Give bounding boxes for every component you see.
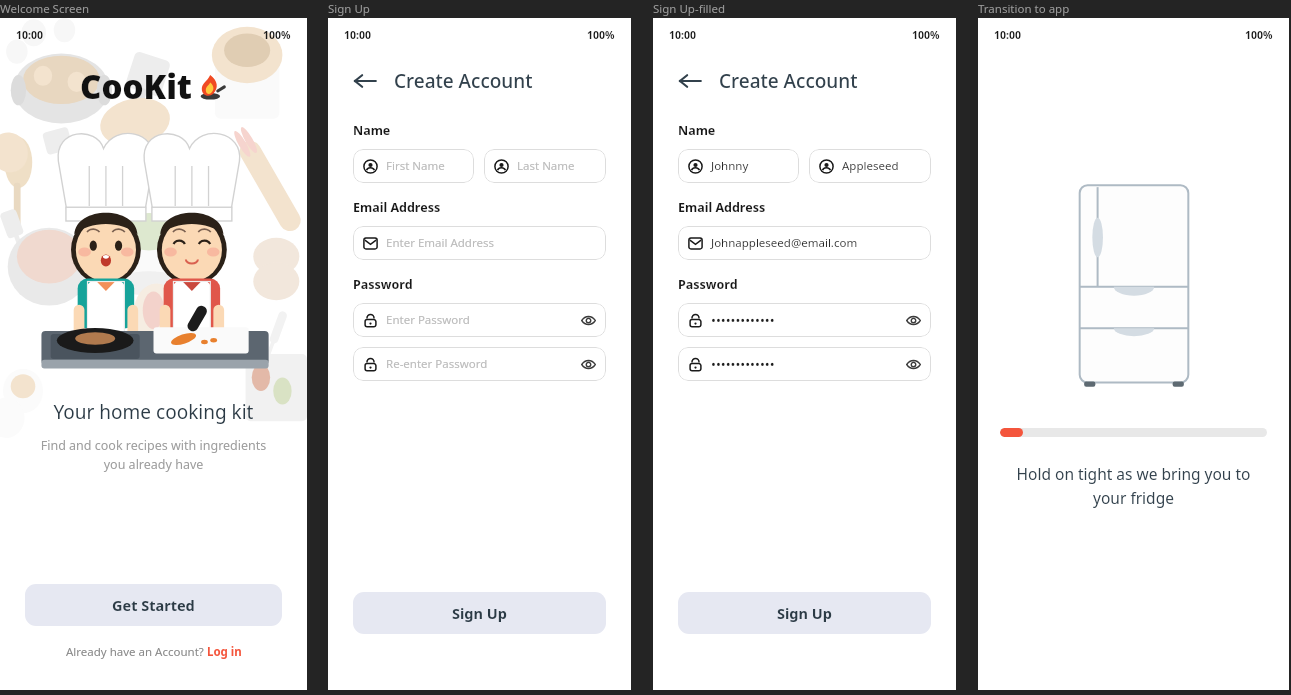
- staticText: Sign Up: [777, 603, 832, 623]
- button[interactable]: First Name: [353, 149, 474, 183]
- staticText: 10:00: [669, 28, 696, 42]
- staticText: Johnny: [711, 158, 749, 174]
- staticText: 100%: [587, 28, 615, 42]
- button[interactable]: Show password: [905, 356, 921, 372]
- staticText: Name: [678, 122, 716, 139]
- staticText: •••••••••••••: [711, 311, 775, 329]
- staticText: Welcome Screen: [0, 1, 90, 17]
- staticText: Name: [353, 122, 391, 139]
- button[interactable]: •••••••••••••: [678, 347, 931, 381]
- button[interactable]: Enter Email Address: [353, 226, 606, 260]
- staticText: Sign Up: [328, 1, 370, 17]
- staticText: Enter Email Address: [386, 235, 494, 251]
- staticText: Already have an Account?: [66, 644, 207, 660]
- staticText: Email Address: [678, 199, 766, 216]
- button[interactable]: Re-enter Password: [353, 347, 606, 381]
- button[interactable]: Enter Password: [353, 303, 606, 337]
- staticText: •••••••••••••: [711, 355, 775, 373]
- staticText: 10:00: [344, 28, 371, 42]
- button[interactable]: Appleseed: [809, 149, 931, 183]
- staticText: Johnappleseed@email.com: [711, 235, 858, 251]
- staticText: Re-enter Password: [386, 356, 488, 372]
- button[interactable]: Back: [350, 66, 380, 96]
- staticText: Last Name: [517, 158, 575, 174]
- staticText: Sign Up-filled: [653, 1, 726, 17]
- staticText: Hold on tight as we bring you to your fr…: [990, 463, 1277, 508]
- button[interactable]: Last Name: [484, 149, 606, 183]
- staticText: Appleseed: [842, 158, 899, 174]
- button[interactable]: Sign Up: [353, 592, 606, 634]
- staticText: Your home cooking kit: [0, 399, 307, 425]
- staticText: Create Account: [719, 68, 858, 94]
- button[interactable]: •••••••••••••: [678, 303, 931, 337]
- button[interactable]: Show password: [580, 312, 596, 328]
- staticText: Password: [678, 276, 738, 293]
- staticText: 10:00: [994, 28, 1021, 42]
- staticText: Create Account: [394, 68, 533, 94]
- staticText: Enter Password: [386, 312, 470, 328]
- staticText: Email Address: [353, 199, 441, 216]
- staticText: 100%: [1245, 28, 1273, 42]
- button[interactable]: Sign Up: [678, 592, 931, 634]
- staticText: Find and cook recipes with ingredients y…: [14, 437, 293, 473]
- staticText: Password: [353, 276, 413, 293]
- button[interactable]: Show password: [580, 356, 596, 372]
- staticText: CooKit: [80, 64, 193, 109]
- button[interactable]: Already have an Account?: [0, 644, 307, 660]
- button[interactable]: Get Started: [25, 584, 282, 626]
- staticText: Sign Up: [452, 603, 507, 623]
- staticText: 100%: [912, 28, 940, 42]
- staticText: Get Started: [112, 595, 195, 615]
- staticText: First Name: [386, 158, 445, 174]
- button[interactable]: Back: [675, 66, 705, 96]
- staticText: Transition to app: [978, 1, 1070, 17]
- staticText: 100%: [263, 28, 291, 42]
- staticText: Log in: [207, 644, 242, 660]
- button[interactable]: Show password: [905, 312, 921, 328]
- staticText: 10:00: [16, 28, 43, 42]
- button[interactable]: Johnappleseed@email.com: [678, 226, 931, 260]
- button[interactable]: Johnny: [678, 149, 799, 183]
